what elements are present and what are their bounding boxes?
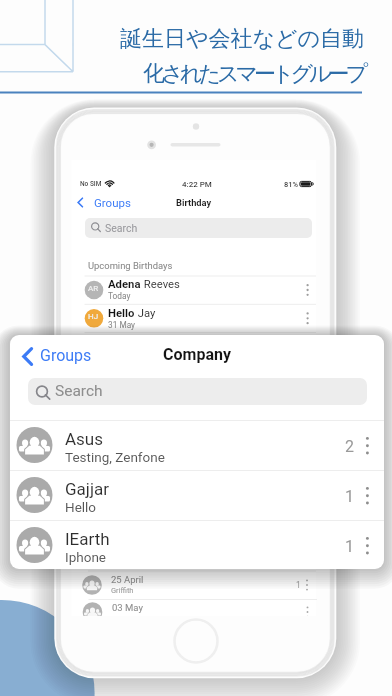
- staticText: 1: [296, 580, 301, 590]
- staticText: Groups: [40, 346, 92, 365]
- staticText: 25 April: [111, 574, 144, 585]
- staticText: AR: [88, 284, 99, 293]
- button[interactable]: Search: [28, 378, 367, 405]
- button[interactable]: IEarth: [10, 520, 384, 569]
- staticText: 誕生日や会社などの自動: [0, 25, 364, 53]
- staticText: 1: [345, 537, 354, 556]
- staticText: Testing, Zenfone: [65, 449, 165, 465]
- staticText: 03 May: [112, 602, 143, 613]
- staticText: HJ: [88, 312, 99, 321]
- staticText: Search: [105, 222, 138, 234]
- staticText: Upcoming Birthdays: [88, 260, 173, 271]
- staticText: Company: [163, 345, 231, 364]
- button[interactable]: Search: [85, 218, 312, 238]
- staticText: Asus: [65, 429, 104, 449]
- staticText: Iphone: [65, 549, 107, 565]
- staticText: 4:22 PM: [182, 180, 212, 189]
- staticText: 81%: [284, 180, 299, 189]
- staticText: Gajjar: [65, 479, 109, 499]
- button[interactable]: Gajjar: [10, 470, 384, 520]
- staticText: 2: [345, 437, 354, 456]
- staticText: IEarth: [65, 529, 110, 549]
- staticText: 化されたスマートグループ: [0, 60, 364, 88]
- staticText: Hello: [65, 499, 97, 515]
- button[interactable]: Groups: [16, 342, 92, 371]
- staticText: Griffith: [111, 586, 134, 595]
- staticText: Birthday: [176, 197, 212, 208]
- button[interactable]: Asus: [10, 420, 384, 470]
- staticText: Today: [108, 291, 131, 301]
- button[interactable]: Groups: [94, 196, 131, 209]
- staticText: Search: [55, 382, 103, 400]
- staticText: Hello: [108, 307, 135, 320]
- staticText: Reeves: [141, 278, 180, 291]
- staticText: Jay: [135, 307, 156, 320]
- staticText: Adena: [108, 278, 141, 291]
- staticText: No SIM: [80, 180, 102, 188]
- staticText: 1: [345, 487, 354, 506]
- staticText: 31 May: [108, 320, 136, 330]
